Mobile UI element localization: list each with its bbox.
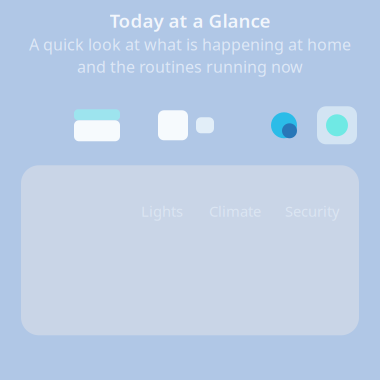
staticText: Climate [209,201,261,221]
staticText: Lights [141,201,183,221]
staticText: Security [285,201,339,221]
staticText: A quick look at what is happening at hom… [29,34,351,55]
staticText: Today at a Glance [109,8,270,33]
staticText: and the routines running now [77,56,303,77]
